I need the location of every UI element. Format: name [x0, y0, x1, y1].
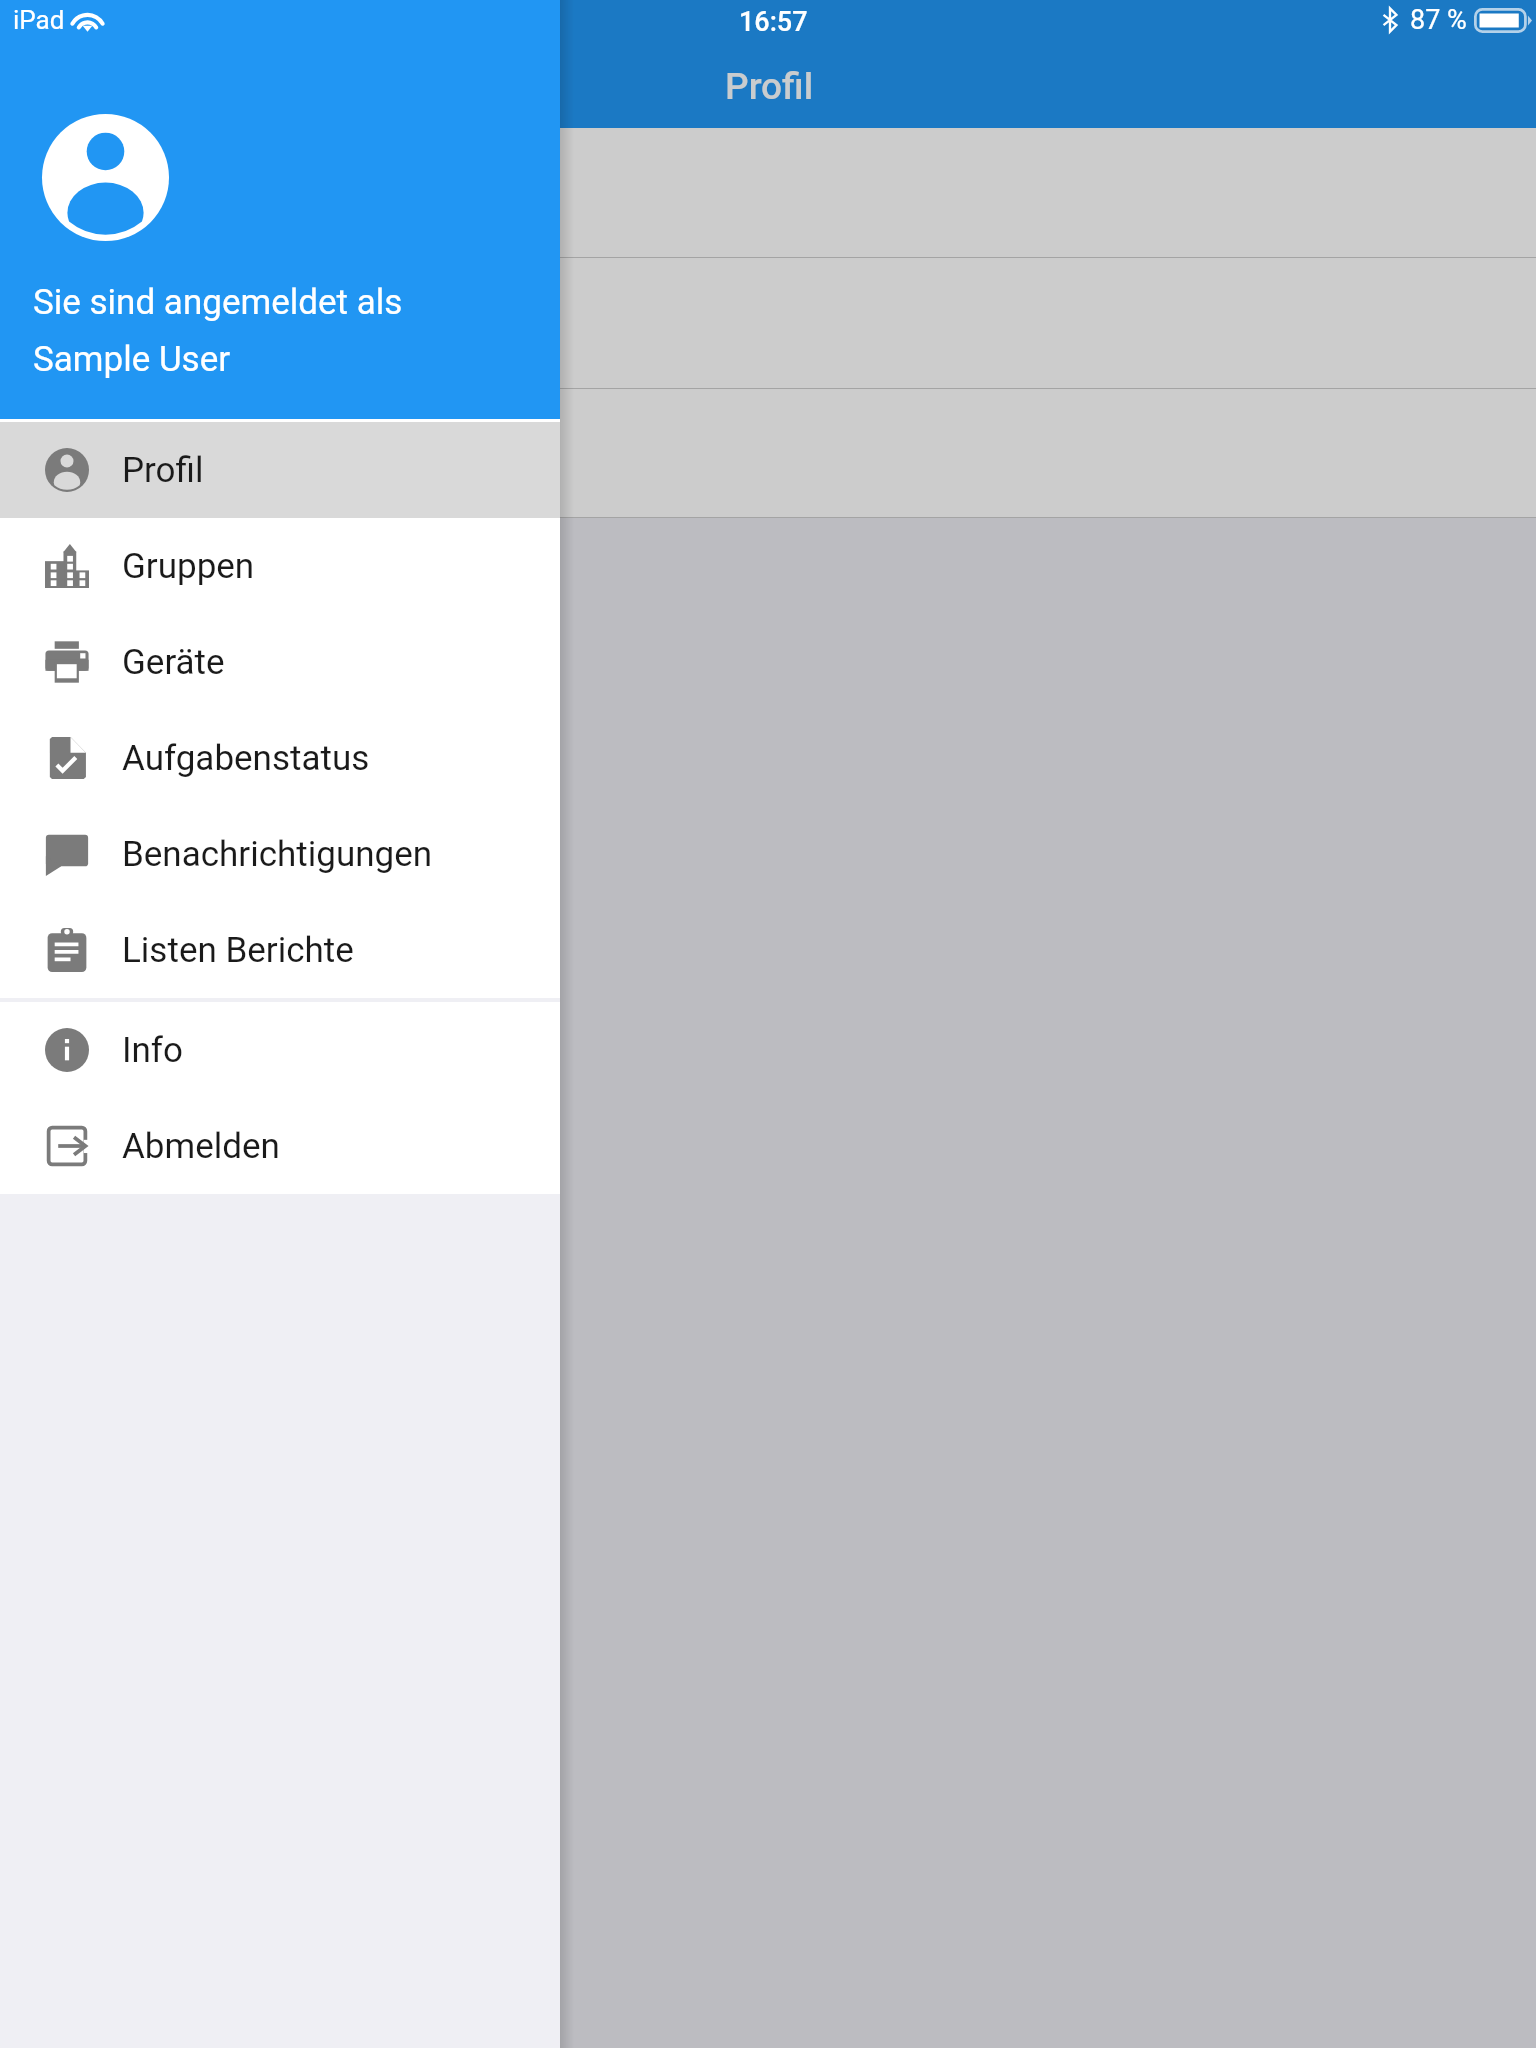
- staticText: Info: [122, 1030, 183, 1071]
- button[interactable]: Benachrichtigungen: [0, 806, 560, 902]
- staticText: Profil: [122, 450, 204, 491]
- button[interactable]: Profil Zeile 2: [0, 258, 1536, 388]
- staticText: 87 %: [1410, 4, 1467, 36]
- staticText: Benachrichtigungen: [122, 834, 433, 875]
- button[interactable]: Aufgabenstatus: [0, 710, 560, 806]
- staticText: Listen Berichte: [122, 930, 354, 971]
- staticText: Sie sind angemeldet als: [33, 282, 403, 323]
- button[interactable]: Profil: [0, 422, 560, 518]
- staticText: Sample User: [33, 339, 231, 380]
- staticText: iPad: [13, 5, 65, 35]
- staticText: Profil: [725, 65, 814, 108]
- staticText: Abmelden: [122, 1126, 280, 1167]
- button[interactable]: Info: [0, 1002, 560, 1098]
- button[interactable]: Abmelden: [0, 1098, 560, 1194]
- button[interactable]: Sie sind angemeldet als Sample User: [0, 0, 560, 419]
- staticText: Geräte: [122, 642, 225, 683]
- button[interactable]: Listen Berichte: [0, 902, 560, 998]
- staticText: Aufgabenstatus: [122, 738, 370, 779]
- button[interactable]: Geräte: [0, 614, 560, 710]
- staticText: 16:57: [739, 6, 808, 38]
- button[interactable]: Gruppen: [0, 518, 560, 614]
- staticText: Gruppen: [122, 546, 255, 587]
- button[interactable]: Profil Zeile 1: [0, 128, 1536, 257]
- button[interactable]: Profil Zeile 3: [0, 389, 1536, 517]
